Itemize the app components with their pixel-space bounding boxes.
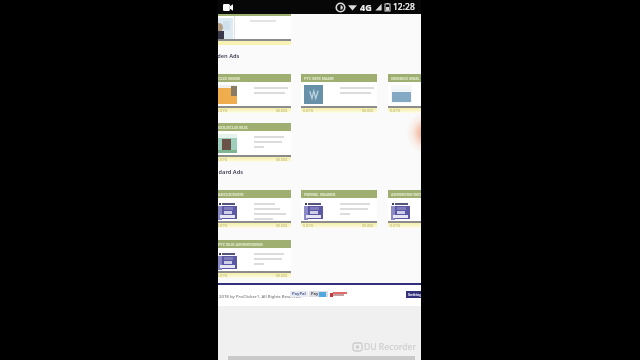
staticText: GOLDCLIX BUX [218, 125, 248, 130]
staticText: PTC BUX ADVERTISING [218, 242, 263, 247]
button[interactable]: PTC SITE NAME [301, 74, 377, 113]
staticText: 0.01% [390, 223, 401, 228]
button[interactable]: CLIX SENSE [218, 74, 291, 113]
staticText: $0.002 [276, 273, 288, 278]
staticText: 0.01% [218, 273, 228, 278]
button[interactable]: Settings [406, 291, 421, 298]
staticText: Standard Ads [218, 168, 243, 176]
staticText: 12:28 [393, 1, 415, 13]
staticText: DU Recorder [364, 341, 417, 353]
staticText: $0.002 [276, 157, 288, 162]
staticText: Pay [311, 291, 319, 297]
staticText: 0.01% [303, 223, 314, 228]
staticText: PTC SITE NAME [304, 76, 334, 81]
staticText: $0.002 [362, 108, 374, 113]
staticText: Settings [408, 292, 421, 298]
staticText: PAYPAL GRABER [304, 192, 336, 197]
staticText: 2018 by ProClicker1. All Rights Reserved [219, 293, 301, 299]
staticText: ADCLICKSITE [218, 192, 244, 197]
staticText: $0.002 [362, 223, 374, 228]
button[interactable]: Payeer [309, 291, 328, 297]
button[interactable]: Perfect Money [329, 291, 348, 297]
button[interactable]: NEOBUX MAIL [388, 74, 421, 113]
staticText: $0.002 [276, 108, 288, 113]
button[interactable]: Scroll to top [406, 112, 421, 154]
staticText: CLIX SENSE [218, 76, 241, 81]
staticText: 0.01% [218, 108, 228, 113]
staticText: NEOBUX MAIL [391, 76, 420, 81]
button[interactable]: PTC BUX ADVERTISING [218, 240, 291, 278]
button[interactable] [218, 14, 291, 45]
staticText: Golden Ads [218, 52, 240, 60]
button[interactable]: PAYPAL GRABER [301, 190, 377, 228]
staticText: ADVERTISE WITH US [391, 192, 421, 197]
staticText: $0.002 [276, 223, 288, 228]
button[interactable]: GOLDCLIX BUX [218, 123, 291, 162]
staticText: 0.01% [303, 108, 314, 113]
staticText: 0.01% [218, 157, 228, 162]
staticText: 0.01% [390, 108, 401, 113]
staticText: PayPal [292, 291, 306, 297]
staticText: 0.01% [218, 223, 228, 228]
button[interactable]: ADCLICKSITE [218, 190, 291, 228]
staticText: 4G [360, 1, 372, 13]
button[interactable]: PayPal [290, 291, 308, 297]
button[interactable]: ADVERTISE WITH US [388, 190, 421, 228]
